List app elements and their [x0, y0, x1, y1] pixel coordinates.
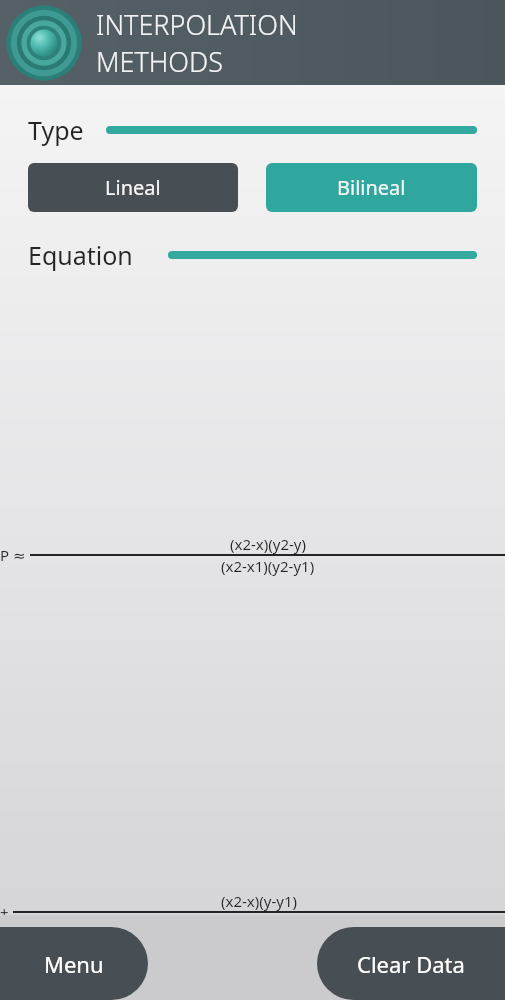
button[interactable]: Lineal: [28, 163, 238, 212]
staticText: INTERPOLATION: [96, 6, 298, 43]
staticText: Bilineal: [337, 174, 406, 201]
staticText: (x2-x1)(y2-y1): [221, 556, 315, 576]
staticText: +: [0, 902, 13, 922]
button[interactable]: Clear Data: [317, 927, 505, 1000]
staticText: METHODS: [96, 43, 223, 80]
staticText: (x2-x)(y-y1): [221, 891, 297, 911]
staticText: Menu: [44, 949, 104, 979]
staticText: (x2-x)(y2-y): [230, 534, 306, 554]
staticText: (x2-x1)(y2-y1): [212, 913, 306, 933]
button[interactable]: Menu: [0, 927, 148, 1000]
staticText: Clear Data: [357, 949, 465, 979]
staticText: P ≈: [0, 545, 30, 565]
staticText: Equation: [28, 238, 133, 272]
staticText: Lineal: [105, 174, 161, 201]
staticText: Type: [28, 113, 84, 147]
button[interactable]: Bilineal: [266, 163, 477, 212]
